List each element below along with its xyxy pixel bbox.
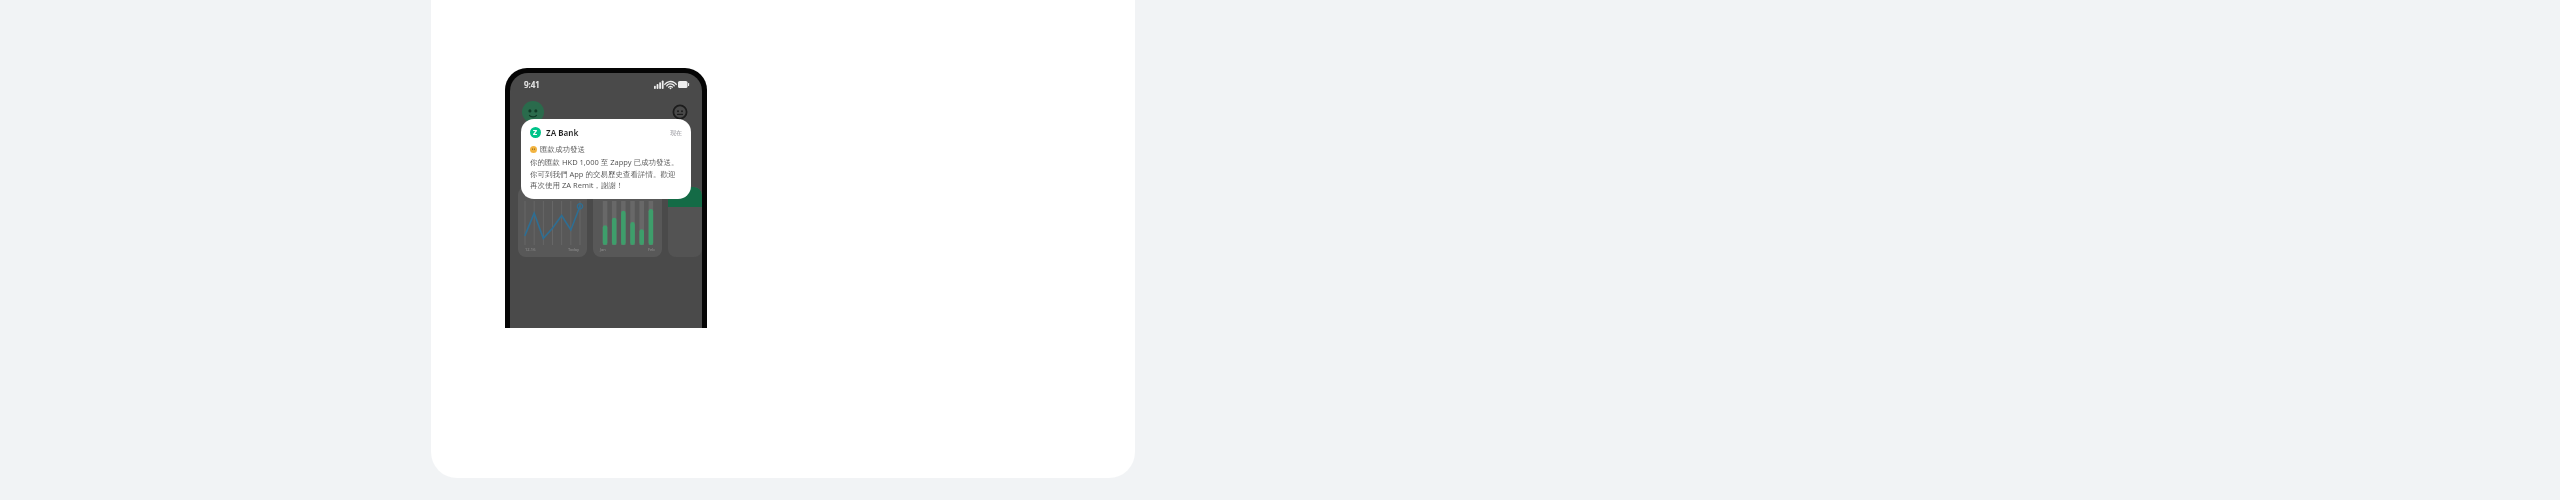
staticText: Jan — [600, 247, 606, 252]
button[interactable]: HKD equiv. — [518, 187, 587, 257]
staticText: 匯款成功發送 — [540, 145, 585, 154]
staticText: 你的匯款 HKD 1,000 至 Zappy 已成功發送。你可到我們 App 的… — [530, 157, 682, 190]
button[interactable] — [668, 187, 702, 257]
staticText: Today — [568, 247, 580, 252]
button[interactable]: This month HKD equiv. — [593, 187, 662, 257]
staticText: 9:41 — [524, 79, 540, 90]
staticText: ZA Bank — [546, 127, 579, 138]
staticText: 12-16 — [525, 247, 536, 252]
button[interactable]: Z — [521, 119, 691, 199]
button[interactable]: Support — [670, 102, 690, 122]
button[interactable]: Profile — [522, 101, 544, 123]
staticText: Z — [533, 128, 538, 138]
staticText: 現在 — [670, 129, 682, 137]
staticText: Feb — [648, 247, 655, 252]
staticText: HKD equiv. — [525, 192, 549, 198]
